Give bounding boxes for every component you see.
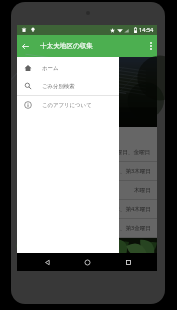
button[interactable]: 資源物 bbox=[17, 181, 157, 199]
button[interactable]: このアプリについて bbox=[17, 96, 119, 114]
staticText: ごみ分別検索 bbox=[42, 83, 75, 90]
button[interactable]: プラスチック bbox=[17, 162, 157, 180]
staticText: 14:54 bbox=[139, 26, 154, 34]
staticText: このアプリについて bbox=[42, 102, 92, 109]
button[interactable]: ごみ分別検索 bbox=[17, 77, 119, 95]
staticText: 第1、第3木曜日 bbox=[111, 167, 151, 175]
staticText: 木曜日 bbox=[134, 187, 151, 194]
button[interactable]: Recents bbox=[117, 253, 139, 271]
button[interactable]: ホーム bbox=[17, 59, 119, 77]
button[interactable]: Back bbox=[36, 253, 58, 271]
button[interactable]: 有害ごみ bbox=[17, 219, 157, 237]
staticText: 第2、第4木曜日 bbox=[111, 205, 151, 213]
staticText: ホーム bbox=[42, 65, 59, 72]
staticText: 火曜日、金曜日 bbox=[111, 149, 151, 156]
button[interactable]: More options bbox=[144, 35, 157, 57]
button[interactable]: Home bbox=[76, 253, 98, 271]
staticText: 十太夫地区の収集 bbox=[40, 42, 93, 50]
staticText: 第1、第3金曜日 bbox=[111, 224, 151, 232]
button[interactable]: Back bbox=[17, 35, 34, 57]
button[interactable]: びん・かん bbox=[17, 200, 157, 218]
button[interactable]: 燃やすごみ bbox=[17, 143, 157, 161]
